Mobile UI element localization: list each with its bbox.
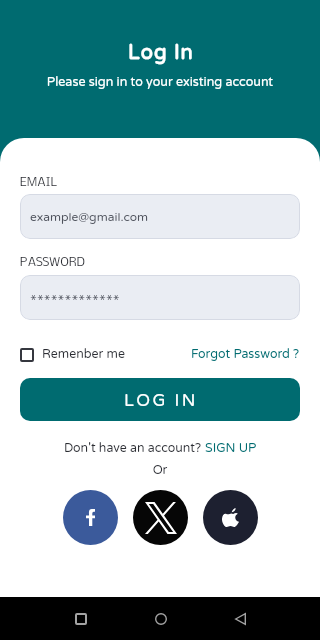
staticText: Log In (1, 41, 320, 65)
button[interactable]: ************* (20, 275, 300, 320)
staticText: Forgot Password ? (191, 347, 300, 362)
staticText: Please sign in to your existing account (0, 75, 320, 90)
button[interactable]: Remenber me (20, 347, 125, 362)
staticText: example@gmail.com (30, 210, 149, 224)
staticText: Don't have an account? (64, 441, 205, 456)
button[interactable]: LOG IN (20, 378, 300, 421)
staticText: LOG IN (124, 390, 198, 410)
staticText: EMAIL (20, 172, 58, 191)
button[interactable]: SIGN UP (205, 441, 257, 456)
button[interactable]: Home (147, 605, 174, 632)
button[interactable]: example@gmail.com (20, 194, 300, 239)
button[interactable]: Forgot Password ? (191, 347, 300, 362)
button[interactable]: Sign in with Facebook (63, 490, 118, 545)
staticText: SIGN UP (205, 441, 257, 456)
button[interactable]: Recent apps (67, 605, 94, 632)
staticText: Or (0, 463, 320, 478)
button[interactable]: Back (227, 605, 254, 632)
staticText: Remenber me (42, 347, 125, 362)
button[interactable]: Sign in with Apple (203, 490, 258, 545)
button[interactable]: Sign in with X (133, 490, 188, 545)
staticText: ************* (30, 289, 120, 311)
staticText: PASSWORD (20, 252, 86, 271)
